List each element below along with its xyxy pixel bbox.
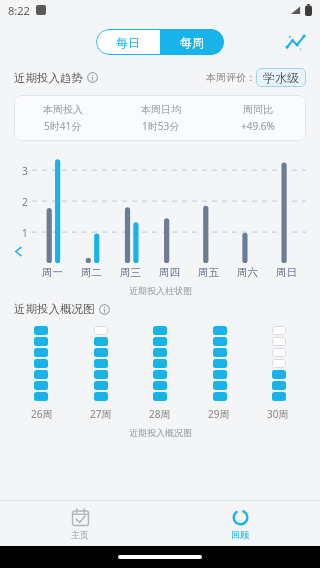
staticText: 27周 <box>90 407 112 421</box>
staticText: 30周 <box>267 407 289 421</box>
staticText: 1时53分 <box>142 119 180 133</box>
staticText: 28周 <box>149 407 171 421</box>
staticText: 周五 <box>198 266 219 279</box>
staticText: 1 <box>22 226 28 240</box>
staticText: 每日 <box>116 35 140 50</box>
staticText: 周二 <box>81 266 102 279</box>
button[interactable]: 上一周 <box>10 243 26 259</box>
button[interactable]: 主页 <box>0 501 160 546</box>
staticText: 近期投入概况图 <box>129 427 192 438</box>
staticText: 本周日均 <box>141 103 181 116</box>
staticText: 周四 <box>159 266 180 279</box>
staticText: 29周 <box>208 407 230 421</box>
staticText: 近期投入趋势 <box>14 71 83 85</box>
staticText: 5时41分 <box>44 119 82 133</box>
staticText: 每周 <box>180 35 204 50</box>
staticText: 近期投入概况图 <box>14 302 95 316</box>
button[interactable]: 回顾 <box>160 501 320 546</box>
staticText: 8:22 <box>8 3 30 18</box>
staticText: 周三 <box>120 266 141 279</box>
staticText: 回顾 <box>231 529 249 540</box>
staticText: 本周评价： <box>206 71 256 84</box>
staticText: 3 <box>22 164 28 178</box>
button[interactable]: 每日 <box>96 29 160 55</box>
staticText: 2 <box>22 195 28 209</box>
button[interactable]: 每周 <box>160 29 224 55</box>
staticText: 主页 <box>71 529 89 540</box>
staticText: 周同比 <box>243 103 273 116</box>
staticText: 本周投入 <box>43 103 83 116</box>
button[interactable]: 学水级 <box>256 68 306 87</box>
button[interactable]: 统计图表 <box>280 27 310 57</box>
staticText: 学水级 <box>263 70 299 85</box>
staticText: 近期投入柱状图 <box>129 285 192 296</box>
staticText: 周一 <box>42 266 63 279</box>
button[interactable]: 本周投入 <box>14 95 306 141</box>
staticText: 26周 <box>31 407 53 421</box>
staticText: +49.6% <box>241 119 275 133</box>
staticText: 周六 <box>237 266 258 279</box>
staticText: 周日 <box>276 266 297 279</box>
